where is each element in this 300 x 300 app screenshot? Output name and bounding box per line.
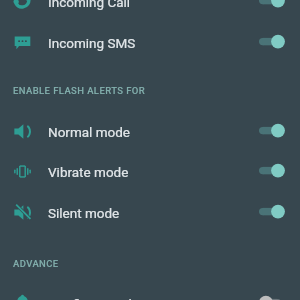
staticText: ADVANCE xyxy=(13,258,59,269)
staticText: Incoming SMS xyxy=(48,35,136,51)
staticText: Normal mode xyxy=(48,124,131,140)
button[interactable]: Off xyxy=(250,290,290,300)
staticText: Silent mode xyxy=(48,205,120,221)
button[interactable]: Incoming SMS xyxy=(0,22,300,63)
button[interactable]: Normal mode xyxy=(0,111,300,152)
button[interactable]: On xyxy=(250,29,290,57)
button[interactable]: Incoming Call xyxy=(0,0,300,22)
staticText: Notification alert xyxy=(48,296,149,300)
button[interactable]: Notification alert xyxy=(0,283,300,300)
button[interactable]: Vibrate mode xyxy=(0,151,300,192)
button[interactable]: Silent mode xyxy=(0,192,300,233)
button[interactable]: On xyxy=(250,0,290,16)
staticText: ENABLE FLASH ALERTS FOR xyxy=(13,85,146,96)
button[interactable]: On xyxy=(250,158,290,186)
button[interactable]: On xyxy=(250,199,290,227)
button[interactable]: On xyxy=(250,118,290,146)
staticText: Vibrate mode xyxy=(48,164,129,180)
staticText: Incoming Call xyxy=(48,0,131,10)
